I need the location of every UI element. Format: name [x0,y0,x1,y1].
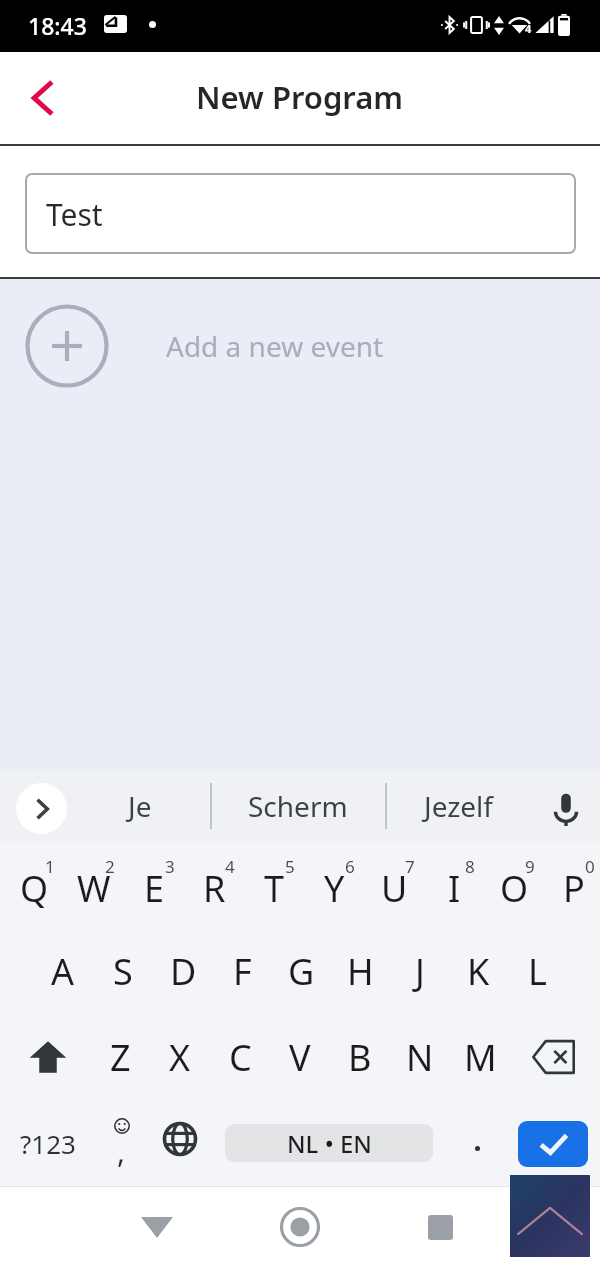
button[interactable]: Test [25,173,576,254]
button[interactable]: M [450,1014,510,1100]
button[interactable]: E [120,842,180,928]
button[interactable]: Back [122,1192,192,1262]
staticText: K [467,947,490,996]
staticText: T [264,864,285,913]
button[interactable]: C [210,1014,270,1100]
button[interactable]: Je [80,770,200,842]
button[interactable] [448,1100,508,1186]
staticText: Je [128,787,152,825]
staticText: H [347,947,374,996]
button[interactable]: P [540,842,600,928]
button[interactable]: A [33,928,93,1014]
button[interactable]: G [272,928,331,1014]
staticText: V [289,1033,311,1082]
staticText: 4 [225,855,235,878]
staticText: 9 [525,855,535,878]
staticText: O [500,864,529,913]
button[interactable]: V [270,1014,330,1100]
staticText: Test [46,194,103,235]
button[interactable]: ?123 [0,1100,95,1186]
button[interactable]: Y [300,842,360,928]
button[interactable]: R [180,842,240,928]
button[interactable]: O [480,842,540,928]
staticText: P [563,864,585,913]
button[interactable]: L [508,928,567,1014]
button[interactable]: Done [518,1121,588,1167]
button[interactable]: Add a new event [0,279,600,415]
staticText: C [229,1033,252,1082]
button[interactable]: U [360,842,420,928]
staticText: 0 [585,855,595,878]
staticText: ?123 [20,1126,76,1161]
staticText: 5 [285,855,295,878]
staticText: M [464,1033,497,1082]
button[interactable]: Expand suggestions [16,783,67,834]
staticText: X [169,1033,191,1082]
button[interactable]: X [150,1014,210,1100]
staticText: L [528,947,547,996]
button[interactable]: Floating app [510,1175,590,1257]
staticText: , [117,1131,126,1172]
button[interactable]: D [153,928,213,1014]
button[interactable]: Jezelf [398,770,518,842]
staticText: Z [110,1033,131,1082]
button[interactable]: Q [0,842,60,928]
staticText: Add a new event [166,327,384,365]
button[interactable]: K [449,928,508,1014]
staticText: Jezelf [424,787,493,825]
button[interactable]: N [390,1014,450,1100]
staticText: J [415,947,425,996]
staticText: 6 [345,855,355,878]
button[interactable]: I [420,842,480,928]
staticText: G [288,947,315,996]
staticText: N [406,1033,434,1082]
button[interactable]: Z [90,1014,150,1100]
staticText: 8 [465,855,475,878]
button[interactable]: Voice input [536,779,596,839]
staticText: Y [324,864,345,913]
button[interactable]: Recents [405,1192,475,1262]
button[interactable]: S [93,928,153,1014]
staticText: F [233,947,252,996]
button[interactable]: Scherm [238,770,358,842]
staticText: 3 [165,855,175,878]
staticText: 1 [45,855,55,878]
staticText: D [170,947,197,996]
staticText: R [203,864,226,913]
staticText: E [144,864,165,913]
staticText: Q [20,864,49,913]
staticText: B [348,1033,372,1082]
staticText: NL • EN [287,1127,372,1160]
button[interactable]: B [330,1014,390,1100]
staticText: S [113,947,133,996]
staticText: W [77,864,111,913]
staticText: 4 [525,21,532,36]
button[interactable]: Back [12,68,72,128]
button[interactable]: Shift [3,1014,93,1100]
button[interactable]: Home [265,1192,335,1262]
button[interactable]: W [60,842,120,928]
staticText: Scherm [248,787,348,825]
staticText: 18:43 [28,10,87,41]
button[interactable]: H [331,928,390,1014]
button[interactable]: NL • EN [225,1124,433,1162]
staticText: U [381,864,408,913]
button[interactable]: Backspace [510,1014,596,1100]
staticText: A [51,947,75,996]
button[interactable]: J [390,928,449,1014]
button[interactable]: Change language [150,1096,210,1182]
button[interactable]: F [213,928,272,1014]
staticText: 2 [105,855,115,878]
button[interactable]: T [240,842,300,928]
button[interactable]: Emoji and comma [92,1100,152,1186]
staticText: I [448,864,461,913]
staticText: 7 [405,855,415,878]
staticText: New Program [196,76,404,118]
